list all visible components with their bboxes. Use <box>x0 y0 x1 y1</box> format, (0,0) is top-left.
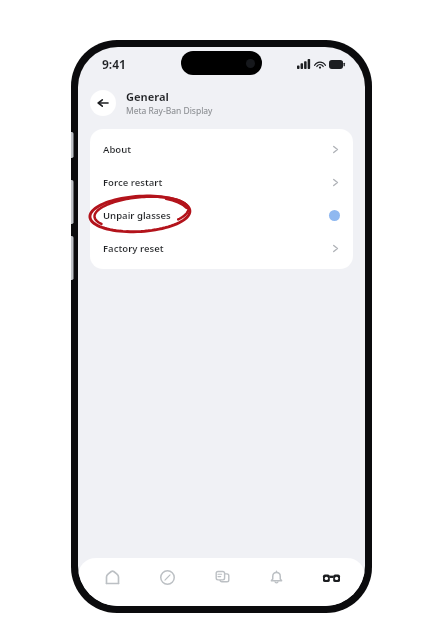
button[interactable]: Back <box>90 90 116 116</box>
staticText: Unpair glasses <box>103 209 329 222</box>
button[interactable]: Glasses <box>311 564 351 590</box>
button[interactable]: Discover <box>147 564 187 590</box>
staticText: Meta Ray-Ban Display <box>126 105 213 117</box>
button[interactable]: Messages <box>202 564 242 590</box>
button[interactable]: Factory reset <box>90 232 353 265</box>
staticText: 9:41 <box>102 56 126 72</box>
staticText: Factory reset <box>103 242 331 255</box>
button[interactable]: Unpair glasses <box>90 199 353 232</box>
staticText: Force restart <box>103 176 331 189</box>
button[interactable]: Force restart <box>90 166 353 199</box>
button[interactable]: About <box>90 133 353 166</box>
staticText: General <box>126 89 169 104</box>
button[interactable]: Home <box>92 564 132 590</box>
button[interactable]: Notifications <box>256 564 296 590</box>
staticText: About <box>103 143 331 156</box>
